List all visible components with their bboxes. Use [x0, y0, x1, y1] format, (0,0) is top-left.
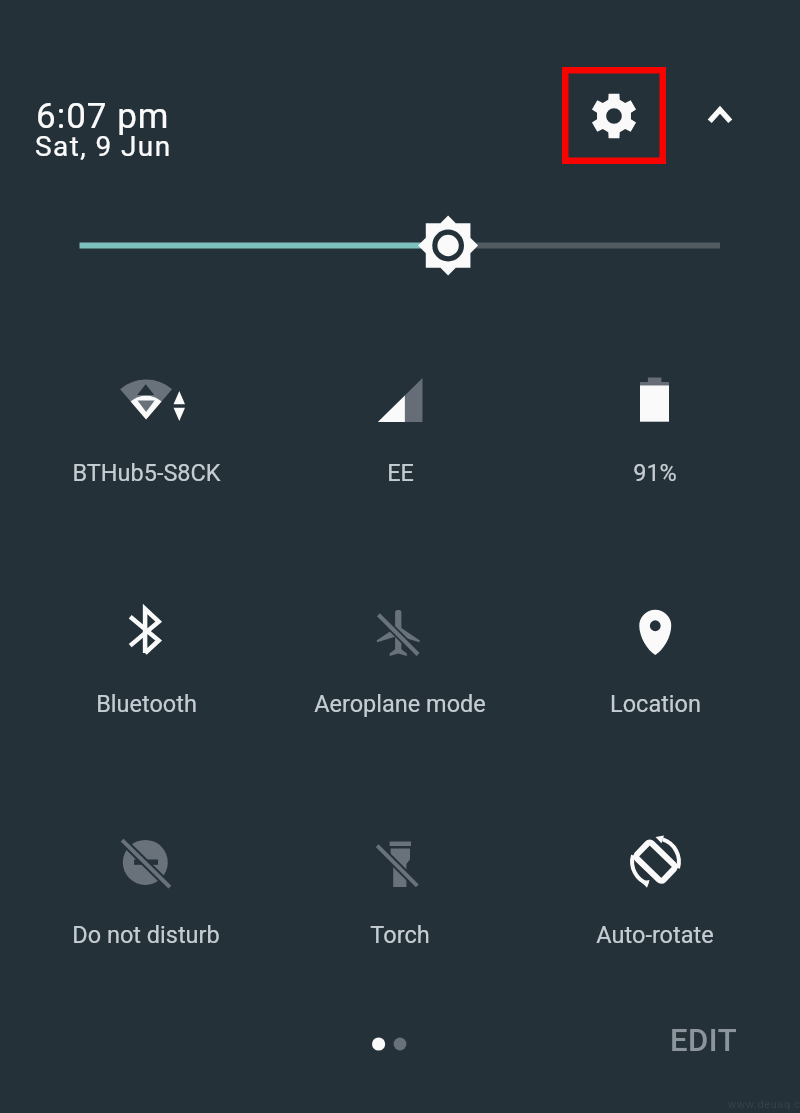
- staticText: www.deuaq.com: [728, 1098, 800, 1111]
- button[interactable]: Location: [530, 531, 780, 731]
- staticText: 91%: [633, 459, 677, 487]
- button[interactable]: Brightness: [0, 210, 800, 280]
- button[interactable]: Torch: [275, 762, 525, 962]
- staticText: Do not disturb: [72, 921, 220, 949]
- staticText: Sat, 9 Jun: [35, 130, 172, 163]
- staticText: EDIT: [670, 1022, 738, 1058]
- staticText: Torch: [370, 921, 430, 949]
- staticText: Aeroplane mode: [314, 690, 486, 718]
- staticText: BTHub5-S8CK: [72, 459, 221, 487]
- button[interactable]: EE: [275, 300, 525, 500]
- button[interactable]: Aeroplane mode: [275, 531, 525, 731]
- staticText: 6:07 pm: [36, 96, 170, 137]
- button[interactable]: BTHub5-S8CK: [21, 300, 271, 500]
- button[interactable]: 91%: [530, 300, 780, 500]
- staticText: EE: [387, 459, 414, 487]
- button[interactable]: Settings: [562, 67, 666, 164]
- button[interactable]: Collapse quick settings: [692, 90, 748, 140]
- button[interactable]: Auto-rotate: [530, 762, 780, 962]
- button[interactable]: Bluetooth: [21, 531, 271, 731]
- button[interactable]: EDIT: [655, 1011, 753, 1069]
- staticText: Bluetooth: [96, 690, 197, 718]
- staticText: Location: [610, 690, 701, 718]
- button[interactable]: Page 1 of 2: [360, 1026, 418, 1062]
- staticText: Auto-rotate: [596, 921, 714, 949]
- button[interactable]: Do not disturb: [21, 762, 271, 962]
